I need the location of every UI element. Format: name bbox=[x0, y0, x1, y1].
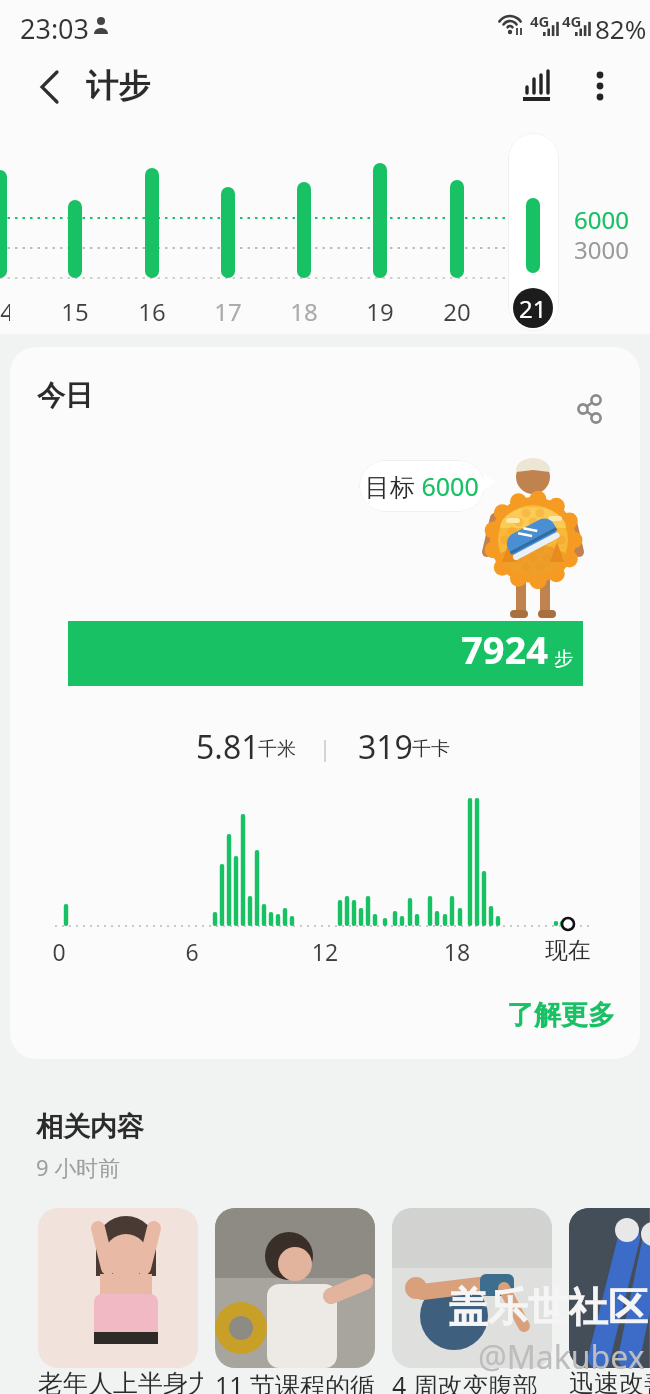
button[interactable] bbox=[514, 62, 562, 110]
staticText: 3000 bbox=[574, 233, 629, 266]
staticText: 9 小时前 bbox=[36, 1152, 121, 1182]
button[interactable] bbox=[215, 1208, 375, 1368]
button[interactable]: 7924 bbox=[68, 621, 583, 686]
staticText: 千米 bbox=[258, 737, 296, 761]
staticText: 12 bbox=[305, 936, 345, 967]
staticText: 5.81 bbox=[196, 725, 260, 769]
staticText: 4G bbox=[562, 11, 582, 31]
staticText: 11 节课程的循 bbox=[215, 1368, 380, 1394]
staticText: 20 bbox=[437, 295, 477, 328]
staticText: 了解更多 bbox=[507, 998, 615, 1032]
staticText: 计步 bbox=[86, 66, 150, 106]
button[interactable] bbox=[565, 385, 613, 433]
staticText: 老年人上半身力 bbox=[38, 1368, 203, 1394]
staticText: 82% bbox=[595, 11, 647, 46]
staticText: @Makubex bbox=[478, 1335, 645, 1379]
button[interactable]: 了解更多 bbox=[435, 993, 625, 1037]
staticText: 0 bbox=[39, 936, 79, 967]
staticText: 16 bbox=[132, 295, 172, 328]
staticText: 目标 6000 bbox=[365, 469, 479, 503]
staticText: 7924 bbox=[461, 623, 548, 675]
staticText: 迅速改善 bbox=[569, 1368, 650, 1394]
staticText: 4 周改变腹部 bbox=[392, 1368, 557, 1394]
button[interactable] bbox=[392, 1208, 552, 1368]
button[interactable]: 21 bbox=[513, 288, 553, 328]
staticText: 319 bbox=[358, 725, 413, 769]
staticText: 18 bbox=[437, 936, 477, 967]
staticText: 4 bbox=[0, 295, 10, 328]
staticText: 17 bbox=[208, 295, 248, 328]
staticText: 18 bbox=[284, 295, 324, 328]
staticText: 千卡 bbox=[412, 737, 450, 761]
button[interactable] bbox=[578, 62, 622, 110]
button[interactable] bbox=[38, 1208, 198, 1368]
button[interactable] bbox=[569, 1208, 650, 1368]
staticText: 现在 bbox=[545, 936, 591, 965]
staticText: 15 bbox=[55, 295, 95, 328]
staticText: 21 bbox=[519, 292, 547, 325]
staticText: 6 bbox=[172, 936, 212, 967]
staticText: 步 bbox=[554, 647, 573, 671]
staticText: 盖乐世社区 bbox=[448, 1282, 648, 1332]
staticText: 4G bbox=[530, 11, 550, 31]
staticText: 6000 bbox=[574, 203, 629, 236]
staticText: 今日 bbox=[37, 378, 93, 413]
staticText: 19 bbox=[360, 295, 400, 328]
staticText: 23:03 bbox=[20, 10, 90, 47]
button[interactable] bbox=[28, 66, 72, 110]
staticText: 相关内容 bbox=[36, 1110, 144, 1144]
